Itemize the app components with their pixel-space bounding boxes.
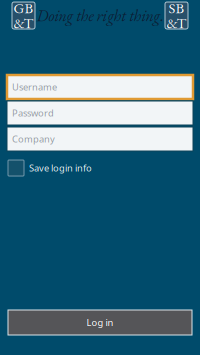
staticText: &T	[166, 13, 186, 33]
staticText: Username	[12, 81, 57, 93]
staticText: Company	[12, 133, 55, 145]
staticText: GB	[13, 0, 33, 17]
button[interactable]: Password	[7, 101, 193, 125]
staticText: Save login info	[29, 162, 92, 174]
staticText: &T	[13, 13, 33, 33]
staticText: Password	[12, 107, 54, 119]
button[interactable]: Save login info	[0, 151, 200, 176]
staticText: Doing the right thing.	[36, 5, 163, 26]
button[interactable]: Company	[7, 127, 193, 151]
button[interactable]: Log in	[0, 310, 200, 335]
staticText: Log in	[86, 316, 113, 329]
button[interactable]: Username	[7, 75, 193, 99]
staticText: SB	[168, 0, 184, 17]
